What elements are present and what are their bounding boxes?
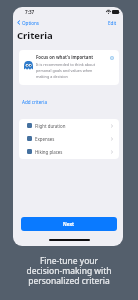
staticText: It is recommended to think about persona… <box>36 62 96 79</box>
button[interactable]: Next <box>21 217 117 231</box>
staticText: Flight duration <box>35 123 66 129</box>
staticText: Criteria <box>17 29 53 42</box>
staticText: Focus on what's important <box>36 54 94 60</box>
staticText: Next <box>63 221 75 227</box>
button[interactable]: Hiking places <box>19 145 119 158</box>
button[interactable]: Options <box>15 19 41 26</box>
staticText: 7:37 <box>25 9 35 15</box>
button[interactable]: Add criteria <box>21 98 48 106</box>
button[interactable]: Flight duration <box>19 119 119 132</box>
staticText: Expenses <box>35 136 55 142</box>
button[interactable]: Edit <box>107 19 118 26</box>
button[interactable]: Expenses <box>19 132 119 145</box>
staticText: Fine-tune your decision-making with pers… <box>0 255 138 287</box>
button[interactable]: Dismiss tip <box>108 54 116 62</box>
staticText: Edit <box>108 20 117 26</box>
staticText: Add criteria <box>22 99 47 105</box>
staticText: Options <box>22 20 40 26</box>
staticText: Hiking places <box>35 149 63 155</box>
